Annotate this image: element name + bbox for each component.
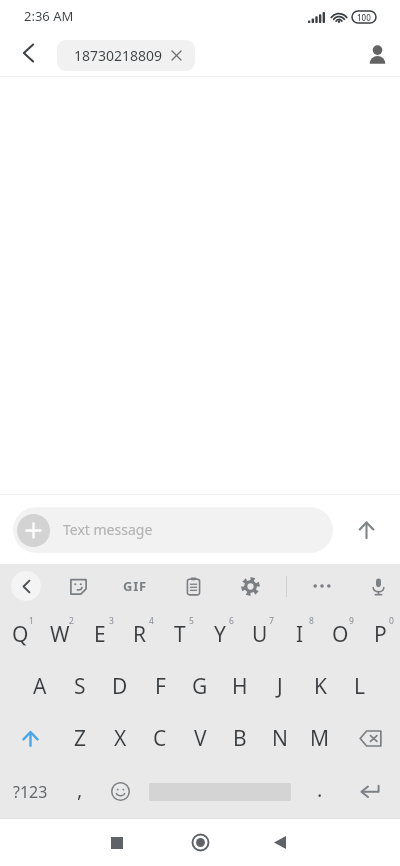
staticText: L: [354, 672, 366, 701]
staticText: H: [232, 672, 248, 701]
button[interactable]: A: [20, 660, 60, 712]
staticText: D: [112, 672, 128, 701]
button[interactable]: S: [60, 660, 100, 712]
staticText: 18730218809: [74, 46, 163, 65]
staticText: J: [277, 672, 283, 701]
button[interactable]: B: [220, 712, 260, 765]
staticText: 5: [189, 615, 194, 627]
staticText: Z: [74, 724, 87, 753]
button[interactable]: Attach: [17, 514, 50, 547]
staticText: 8: [309, 615, 314, 627]
staticText: V: [194, 724, 207, 753]
staticText: ,: [77, 776, 83, 803]
button[interactable]: F: [140, 660, 180, 712]
button[interactable]: Enter: [340, 765, 400, 818]
button[interactable]: Home: [176, 819, 224, 866]
button[interactable]: R: [120, 608, 160, 660]
button[interactable]: Z: [60, 712, 100, 765]
button[interactable]: W: [40, 608, 80, 660]
staticText: U: [252, 620, 268, 649]
staticText: 9: [349, 615, 354, 627]
button[interactable]: Q: [0, 608, 40, 660]
button[interactable]: Emoji: [100, 765, 140, 818]
button[interactable]: Voice input: [361, 569, 395, 603]
staticText: B: [233, 724, 247, 753]
button[interactable]: V: [180, 712, 220, 765]
button[interactable]: GIF: [118, 569, 152, 603]
staticText: 7: [269, 615, 274, 627]
button[interactable]: Recents: [93, 819, 141, 866]
button[interactable]: More options: [305, 569, 339, 603]
staticText: G: [192, 672, 208, 701]
button[interactable]: Backspace: [340, 712, 400, 765]
staticText: 100: [357, 12, 371, 23]
staticText: I: [296, 620, 304, 649]
staticText: .: [317, 776, 323, 803]
button[interactable]: O: [320, 608, 360, 660]
button[interactable]: U: [240, 608, 280, 660]
staticText: 1: [29, 615, 34, 627]
button[interactable]: Expand toolbar: [11, 571, 41, 601]
button[interactable]: Shift: [0, 712, 60, 765]
staticText: W: [50, 620, 70, 649]
button[interactable]: Space: [140, 765, 300, 818]
button[interactable]: L: [340, 660, 380, 712]
staticText: K: [314, 672, 327, 701]
button[interactable]: J: [260, 660, 300, 712]
button[interactable]: Back: [5, 31, 51, 74]
button[interactable]: ?123: [0, 765, 60, 818]
button[interactable]: C: [140, 712, 180, 765]
staticText: N: [272, 724, 288, 753]
button[interactable]: D: [100, 660, 140, 712]
staticText: C: [153, 724, 167, 753]
staticText: X: [114, 724, 127, 753]
staticText: P: [374, 620, 387, 649]
staticText: ?123: [13, 781, 48, 803]
button[interactable]: Attach: [13, 507, 333, 553]
button[interactable]: E: [80, 608, 120, 660]
staticText: 2: [69, 615, 74, 627]
staticText: Text message: [63, 520, 153, 539]
staticText: T: [174, 620, 186, 649]
button[interactable]: T: [160, 608, 200, 660]
staticText: 3: [109, 615, 114, 627]
button[interactable]: Send: [343, 503, 390, 557]
staticText: F: [155, 672, 166, 701]
staticText: O: [332, 620, 349, 649]
staticText: R: [133, 620, 147, 649]
button[interactable]: 18730218809: [57, 40, 195, 71]
button[interactable]: K: [300, 660, 340, 712]
staticText: M: [310, 724, 330, 753]
button[interactable]: Clipboard: [176, 569, 210, 603]
staticText: 0: [389, 615, 394, 627]
staticText: A: [33, 672, 47, 701]
button[interactable]: X: [100, 712, 140, 765]
button[interactable]: Settings: [233, 569, 267, 603]
staticText: Y: [214, 620, 226, 649]
staticText: 2:36 AM: [24, 7, 74, 25]
button[interactable]: M: [300, 712, 340, 765]
staticText: 4: [149, 615, 154, 627]
button[interactable]: ,: [60, 765, 100, 818]
button[interactable]: Contacts: [354, 32, 400, 75]
button[interactable]: .: [300, 765, 340, 818]
button[interactable]: Sticker: [61, 569, 95, 603]
staticText: Q: [12, 620, 29, 649]
staticText: S: [74, 672, 86, 701]
button[interactable]: Y: [200, 608, 240, 660]
button[interactable]: G: [180, 660, 220, 712]
staticText: 6: [229, 615, 234, 627]
button[interactable]: Back: [256, 819, 304, 866]
button[interactable]: H: [220, 660, 260, 712]
button[interactable]: I: [280, 608, 320, 660]
button[interactable]: P: [360, 608, 400, 660]
button[interactable]: N: [260, 712, 300, 765]
staticText: E: [94, 620, 106, 649]
staticText: GIF: [123, 577, 148, 595]
